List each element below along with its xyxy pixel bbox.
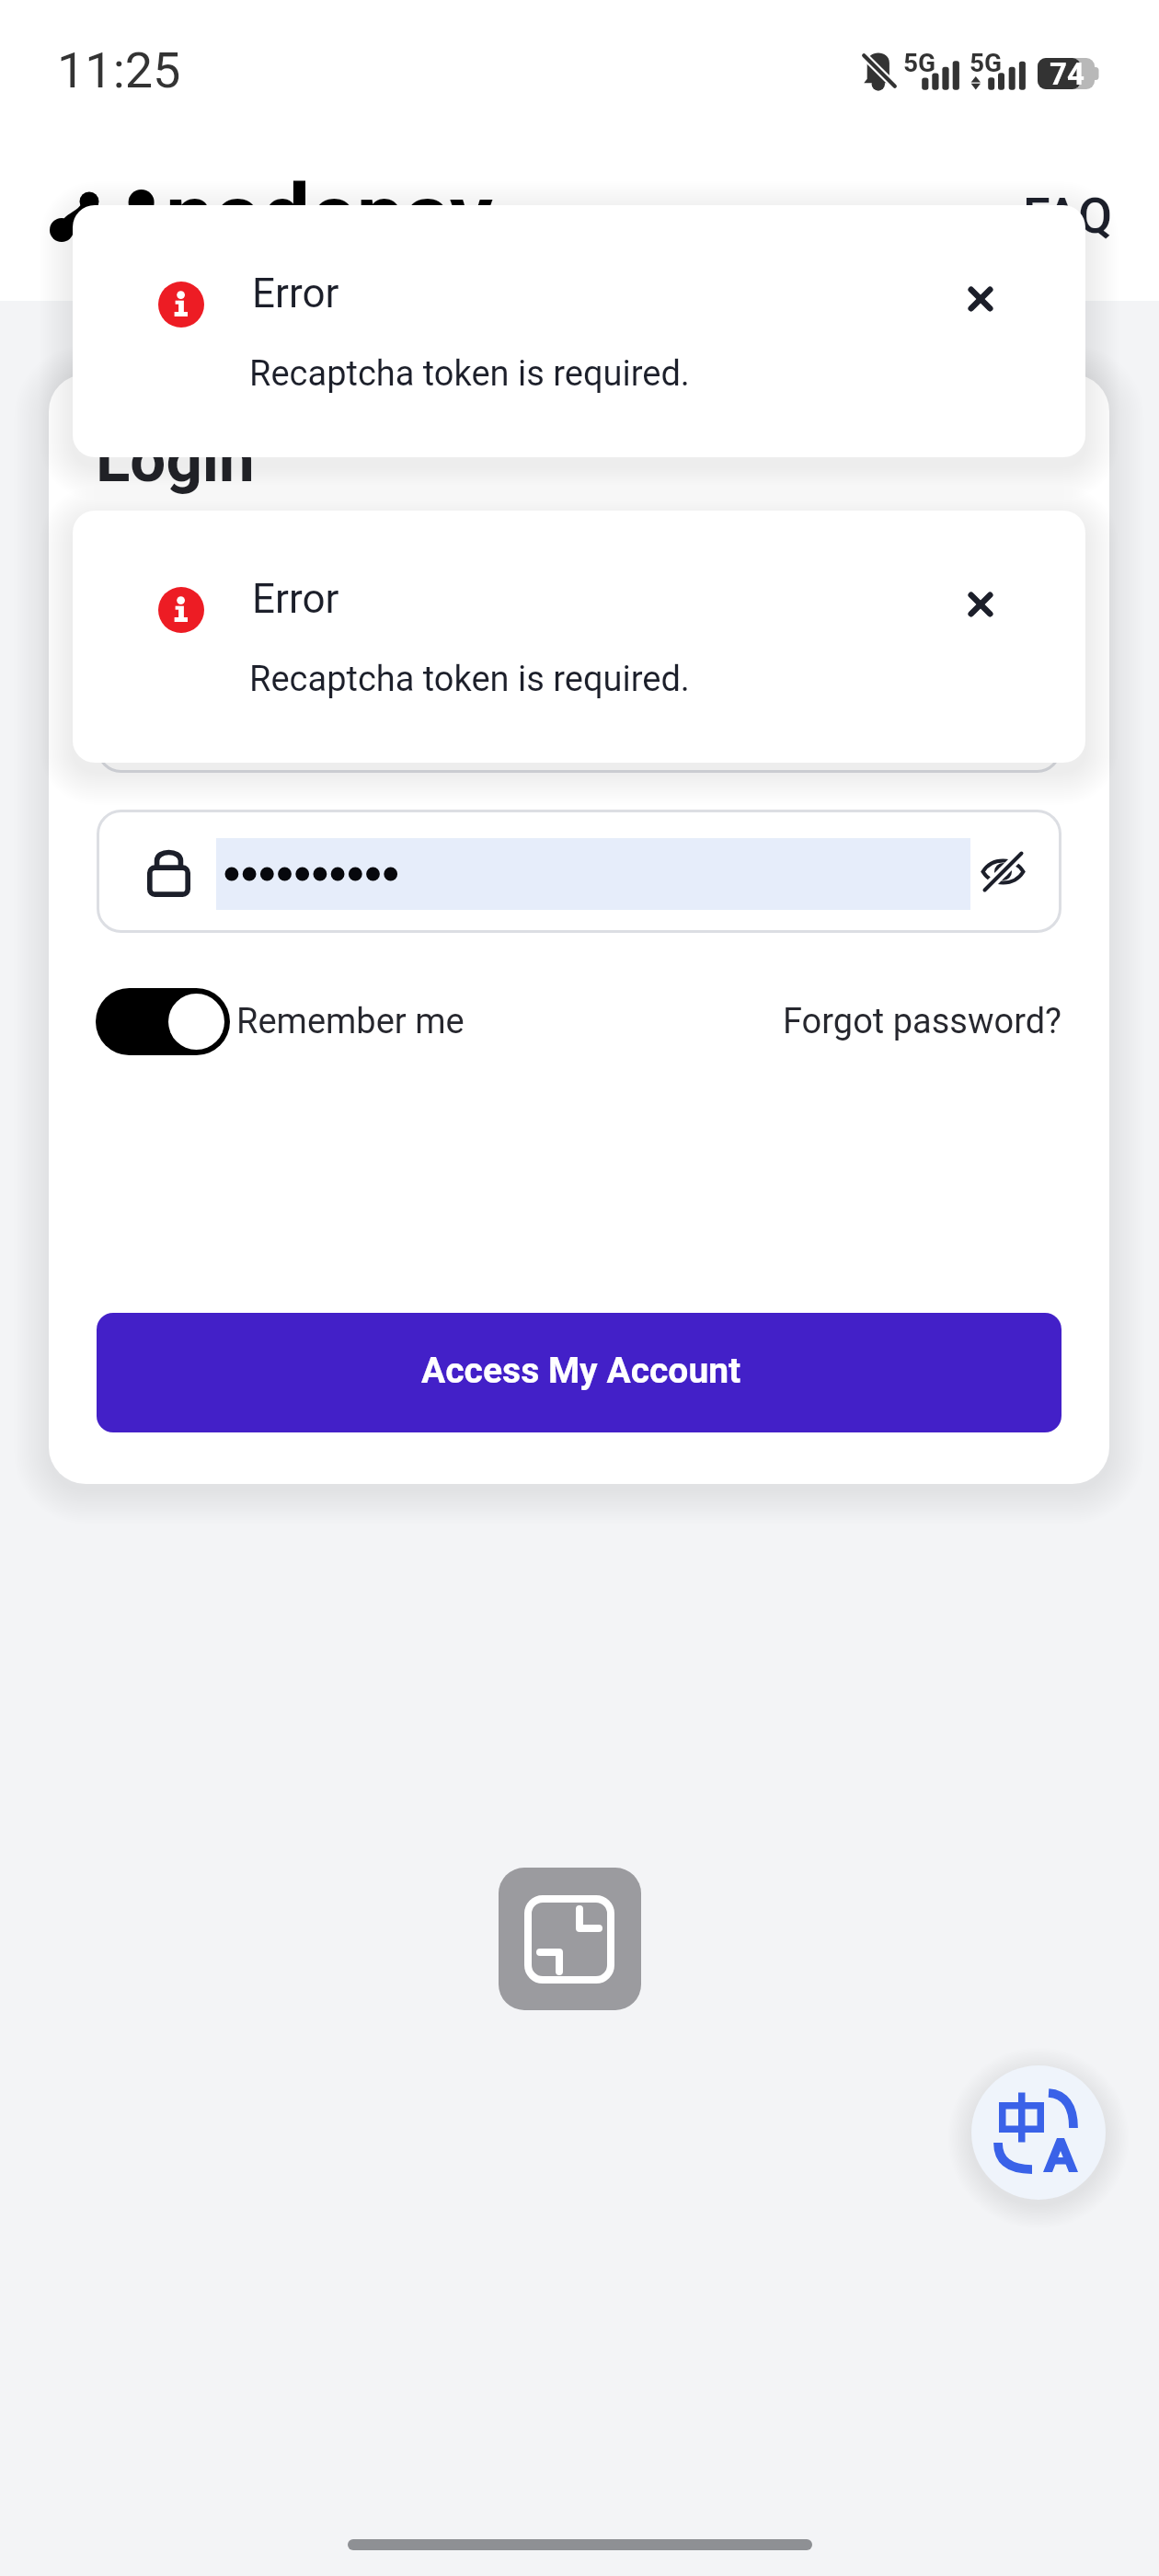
staticText: 74 <box>1050 56 1084 92</box>
staticText: nodepay <box>166 166 493 266</box>
staticText: FAQ <box>1023 187 1113 245</box>
button[interactable]: Translate <box>971 2065 1106 2200</box>
staticText: 5G <box>903 48 936 78</box>
button[interactable]: Resize window <box>499 1868 641 2010</box>
staticText: Recaptcha token is required. <box>249 353 690 395</box>
staticText: Login <box>96 422 255 497</box>
staticText: Error <box>252 270 339 317</box>
button[interactable]: Dismiss error <box>951 270 1010 328</box>
button[interactable]: Remember me <box>96 974 465 1068</box>
staticText: Remember me <box>236 1001 465 1042</box>
button[interactable]: Dismiss error <box>951 575 1010 634</box>
staticText: 5G <box>970 48 1003 78</box>
button[interactable]: Show password <box>978 851 1028 892</box>
staticText: Forgot password? <box>783 1001 1062 1042</box>
staticText: Recaptcha token is required. <box>249 659 690 700</box>
staticText: Access My Account <box>421 1350 741 1392</box>
button[interactable]: FAQ <box>1023 182 1113 248</box>
button[interactable]: Access My Account <box>97 1313 1061 1432</box>
staticText: 11:25 <box>57 41 181 99</box>
staticText: Error <box>252 575 339 623</box>
button[interactable]: Forgot password? <box>656 974 1062 1068</box>
